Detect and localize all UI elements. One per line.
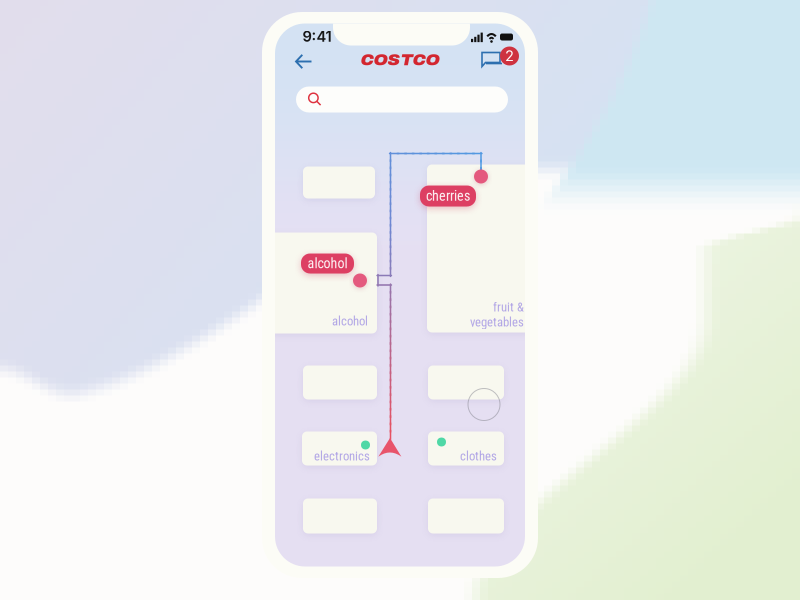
staticText: cherries bbox=[426, 188, 470, 204]
button[interactable]: Messages bbox=[481, 46, 519, 76]
staticText: alcohol bbox=[307, 255, 347, 272]
staticText: electronics bbox=[314, 449, 370, 463]
button[interactable]: Back bbox=[293, 50, 315, 72]
staticText: fruit & bbox=[493, 300, 524, 315]
staticText: 2 bbox=[505, 47, 514, 65]
staticText: COSTCO bbox=[360, 50, 439, 69]
button[interactable]: Search bbox=[296, 86, 508, 112]
staticText: alcohol bbox=[332, 314, 368, 328]
staticText: vegetables bbox=[470, 315, 524, 329]
staticText: clothes bbox=[460, 449, 497, 463]
staticText: 9:41 bbox=[302, 28, 331, 45]
